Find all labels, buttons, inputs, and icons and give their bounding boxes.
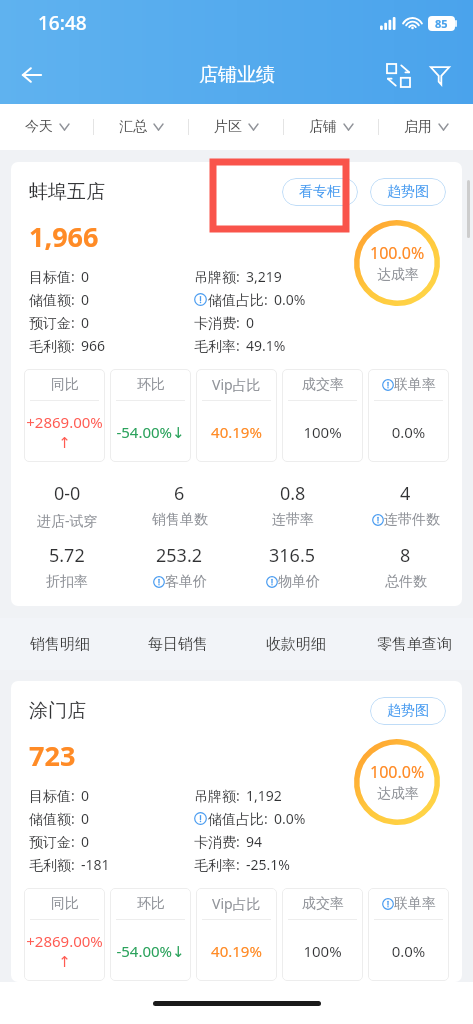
staticText: 店铺: [309, 118, 337, 136]
staticText: 316.5: [269, 543, 316, 568]
staticText: 联单率: [394, 376, 436, 394]
button[interactable]: 趋势图: [370, 178, 446, 206]
staticText: 966: [81, 336, 106, 355]
button[interactable]: Back: [10, 53, 54, 97]
button[interactable]: Compare: [377, 54, 419, 96]
button[interactable]: 316.5: [236, 536, 349, 598]
staticText: 100%: [284, 941, 361, 961]
button[interactable]: 启用: [379, 104, 473, 150]
staticText: 片区: [214, 118, 242, 136]
button[interactable]: 6: [123, 474, 236, 536]
staticText: 启用: [404, 118, 432, 136]
button[interactable]: 看专柜: [282, 178, 358, 206]
button[interactable]: 店铺: [284, 104, 378, 150]
staticText: 0.0%: [370, 422, 447, 442]
staticText: 进店-试穿: [37, 511, 98, 530]
staticText: 同比: [51, 376, 79, 394]
staticText: 连带率: [272, 511, 314, 529]
staticText: 趋势图: [387, 183, 429, 201]
staticText: 客单价: [165, 573, 207, 591]
staticText: 涂门店: [29, 699, 86, 723]
staticText: 达成率: [377, 785, 419, 803]
button[interactable]: Vip占比: [196, 888, 277, 981]
staticText: 目标值:: [29, 786, 75, 805]
staticText: 吊牌额:: [194, 786, 240, 805]
staticText: 40.19%: [198, 941, 275, 961]
staticText: 预订金:: [29, 832, 75, 851]
staticText: 今天: [25, 118, 53, 136]
staticText: 储值额:: [29, 290, 75, 309]
button[interactable]: 片区: [189, 104, 283, 150]
button[interactable]: 4: [349, 474, 462, 536]
staticText: 5.72: [49, 543, 85, 568]
staticText: 蚌埠五店: [29, 180, 105, 204]
staticText: 毛利额:: [29, 336, 75, 355]
staticText: 店铺业绩: [199, 63, 275, 87]
staticText: 0.8: [280, 481, 306, 506]
staticText: 成交率: [302, 895, 344, 913]
button[interactable]: 8: [349, 536, 462, 598]
staticText: 收款明细: [266, 635, 326, 654]
button[interactable]: 0-0: [11, 474, 123, 536]
button[interactable]: 收款明细: [237, 618, 355, 670]
staticText: 毛利率:: [194, 336, 240, 355]
staticText: -25.1%: [246, 855, 290, 874]
button[interactable]: 环比: [110, 369, 191, 462]
button[interactable]: 0.8: [236, 474, 349, 536]
button[interactable]: 今天: [0, 104, 93, 150]
staticText: 0: [81, 786, 90, 805]
staticText: 每日销售: [148, 635, 208, 654]
staticText: 卡消费:: [194, 832, 240, 851]
button[interactable]: 联单率: [368, 888, 449, 981]
staticText: 折扣率: [46, 573, 88, 591]
staticText: 毛利额:: [29, 855, 75, 874]
staticText: -181: [81, 855, 110, 874]
staticText: 储值额:: [29, 809, 75, 828]
staticText: 趋势图: [387, 702, 429, 720]
button[interactable]: 环比: [110, 888, 191, 981]
staticText: 94: [246, 832, 263, 851]
button[interactable]: 253.2: [123, 536, 236, 598]
staticText: 1,966: [29, 218, 99, 255]
staticText: 3,219: [246, 267, 282, 286]
staticText: 0: [81, 267, 90, 286]
staticText: 723: [29, 737, 76, 774]
staticText: 物单价: [278, 573, 320, 591]
staticText: 0.0%: [274, 290, 306, 309]
staticText: 储值占比:: [208, 290, 268, 309]
button[interactable]: 成交率: [282, 369, 363, 462]
staticText: 同比: [51, 895, 79, 913]
button[interactable]: 汇总: [94, 104, 188, 150]
staticText: 联单率: [394, 895, 436, 913]
staticText: 4: [400, 481, 411, 506]
staticText: +2869.00%↑: [26, 412, 103, 451]
button[interactable]: 5.72: [11, 536, 123, 598]
button[interactable]: Vip占比: [196, 369, 277, 462]
button[interactable]: 联单率: [368, 369, 449, 462]
button[interactable]: 每日销售: [119, 618, 237, 670]
staticText: 卡消费:: [194, 313, 240, 332]
button[interactable]: 成交率: [282, 888, 363, 981]
button[interactable]: 同比: [24, 888, 105, 981]
staticText: 连带件数: [384, 511, 440, 529]
staticText: Vip占比: [212, 375, 261, 394]
staticText: 100%: [284, 422, 361, 442]
staticText: 目标值:: [29, 267, 75, 286]
staticText: 销售明细: [30, 635, 90, 654]
staticText: 0: [81, 290, 90, 309]
staticText: 汇总: [119, 118, 147, 136]
staticText: -54.00%↓: [112, 941, 189, 961]
staticText: 0.0%: [274, 809, 306, 828]
staticText: 1,192: [246, 786, 282, 805]
button[interactable]: 销售明细: [0, 618, 119, 670]
button[interactable]: Filter: [419, 54, 461, 96]
button[interactable]: 同比: [24, 369, 105, 462]
button[interactable]: 零售单查询: [355, 618, 473, 670]
staticText: 6: [174, 481, 185, 506]
staticText: 储值占比:: [208, 809, 268, 828]
button[interactable]: 趋势图: [370, 697, 446, 725]
staticText: 环比: [137, 376, 165, 394]
staticText: 85: [435, 16, 448, 31]
staticText: 8: [400, 543, 411, 568]
staticText: 0: [246, 313, 255, 332]
